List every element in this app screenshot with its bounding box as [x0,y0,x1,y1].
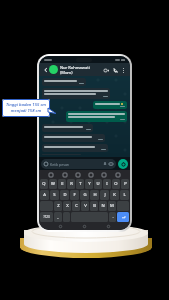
staticText: G [83,192,87,198]
button[interactable]: L [120,190,129,200]
staticText: C [75,203,78,209]
staticText: . [112,214,114,220]
staticText: Y [88,181,91,187]
button[interactable]: X [63,201,71,211]
button[interactable]: Keyboard tool [89,173,93,177]
button[interactable]: U [94,179,102,189]
button[interactable]: Ketik pesan [41,159,116,169]
button[interactable]: G [80,190,89,200]
staticText: Ketik pesan [50,162,70,167]
button[interactable] [42,88,110,99]
button[interactable]: A [40,190,49,200]
staticText: I [106,181,108,187]
button[interactable]: Keyboard tool [102,173,106,177]
button[interactable]: Keyboard tool [63,173,67,177]
staticText: K [113,192,116,198]
button[interactable]: K [110,190,119,200]
button[interactable]: Voice call [111,64,120,76]
staticText: Nur Rahmawati (Mom) [60,65,102,75]
button[interactable]: H [90,190,99,200]
button[interactable]: M [108,201,116,211]
button[interactable]: , [54,212,62,222]
staticText: J [104,192,106,198]
button[interactable]: . [109,212,116,222]
button[interactable] [66,111,127,122]
staticText: M [110,203,114,209]
button[interactable]: B [90,201,98,211]
staticText: Tinggi badan 155 cm menjadi 158 cm [4,102,48,114]
button[interactable]: Z [54,201,62,211]
button[interactable]: V [81,201,89,211]
button[interactable] [42,134,105,142]
staticText: V [84,203,87,209]
button[interactable]: R [67,179,75,189]
staticText: U [96,181,100,187]
button[interactable]: Recents [106,224,111,229]
button[interactable] [42,78,86,86]
button[interactable]: Q [40,179,48,189]
button[interactable]: More options [120,64,127,76]
button[interactable]: I [103,179,111,189]
staticText: D [63,192,67,198]
button[interactable]: S [50,190,59,200]
button[interactable]: Y [85,179,93,189]
staticText: Z [57,203,60,209]
staticText: S [53,192,56,198]
button[interactable]: P [121,179,129,189]
button[interactable]: ?123 [40,212,53,222]
staticText: T [79,181,82,187]
button[interactable]: F [70,190,79,200]
button[interactable]: Keyboard tool [116,173,120,177]
staticText: O [114,181,118,187]
button[interactable]: E [58,179,66,189]
button[interactable]: N [99,201,107,211]
staticText: W [51,181,55,187]
button[interactable]: W [49,179,57,189]
staticText: A [43,192,46,198]
button[interactable]: D [60,190,69,200]
button[interactable]: C [72,201,80,211]
staticText: B [93,203,96,209]
button[interactable]: Back [58,224,63,229]
button[interactable]: Send [118,159,128,169]
button[interactable]: Keyboard tool [49,173,53,177]
staticText: N [101,203,105,209]
button[interactable] [42,144,108,152]
staticText: F [73,192,76,198]
button[interactable]: Home [82,224,87,229]
staticText: P [124,181,127,187]
button[interactable]: T [76,179,84,189]
staticText: X [66,203,69,209]
staticText: ?123 [43,215,50,219]
staticText: E [61,181,64,187]
staticText: H [93,192,97,198]
button[interactable]: Enter [117,212,129,222]
button[interactable]: Video call [102,64,111,76]
staticText: , [57,214,59,220]
button[interactable]: Keyboard tool [76,173,80,177]
button[interactable] [42,124,93,132]
staticText: R [70,181,73,187]
staticText: Q [42,181,46,187]
button[interactable] [93,101,127,109]
button[interactable]: Back [42,66,49,73]
button[interactable]: Tinggi badan 155 cm menjadi 158 cm [2,99,50,117]
button[interactable]: O [112,179,120,189]
staticText: L [123,192,126,198]
button[interactable]: J [100,190,109,200]
